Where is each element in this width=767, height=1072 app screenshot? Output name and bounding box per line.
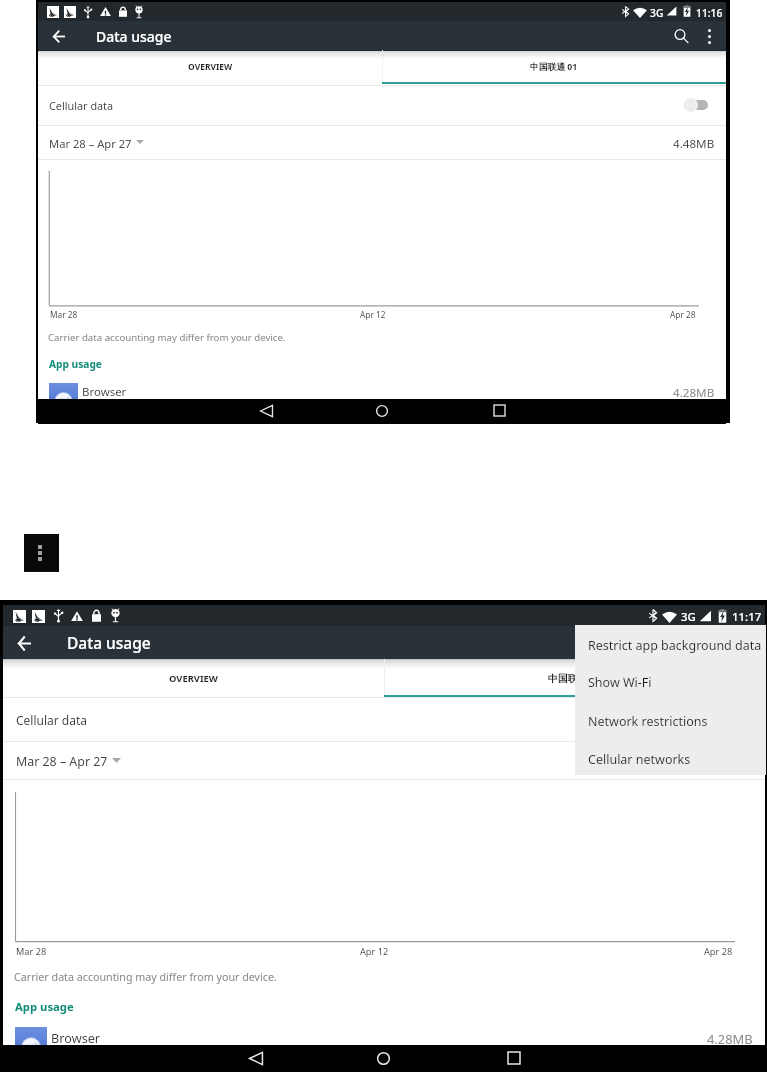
- staticText: OVERVIEW: [169, 672, 218, 685]
- staticText: Cellular data: [16, 712, 88, 728]
- button[interactable]: Browser: [3, 1021, 765, 1049]
- button[interactable]: More options: [24, 534, 59, 572]
- staticText: Apr 28: [670, 309, 696, 320]
- staticText: Mar 28 – Apr 27: [16, 753, 108, 770]
- button[interactable]: Cellular networks: [575, 740, 766, 778]
- staticText: 4.28MB: [707, 1030, 753, 1048]
- staticText: Apr 12: [360, 945, 389, 958]
- button[interactable]: More options: [730, 626, 764, 659]
- button[interactable]: More options: [694, 21, 725, 51]
- staticText: 4.48MB: [673, 136, 715, 152]
- staticText: Browser: [51, 1029, 101, 1046]
- staticText: Apr 12: [360, 309, 386, 320]
- staticText: 中国联通 01: [548, 672, 601, 685]
- button[interactable]: Navigate up: [10, 629, 39, 658]
- button[interactable]: OVERVIEW: [3, 659, 384, 697]
- button[interactable]: Back: [241, 1044, 271, 1072]
- staticText: Data usage: [67, 632, 151, 653]
- button[interactable]: 中国联通 01: [382, 50, 726, 84]
- button[interactable]: 中国联通 01: [384, 659, 765, 697]
- button[interactable]: Mar 28 – Apr 27: [3, 741, 765, 779]
- staticText: 4.28MB: [673, 385, 715, 401]
- staticText: Data usage: [96, 27, 172, 46]
- staticText: Mar 28 – Apr 27: [49, 136, 132, 151]
- button[interactable]: Browser: [38, 377, 726, 402]
- button[interactable]: Cellular data: [38, 85, 726, 125]
- staticText: Browser: [82, 384, 127, 400]
- staticText: App usage: [15, 999, 74, 1014]
- button[interactable]: Recent apps: [499, 1044, 529, 1072]
- staticText: Mar 28: [16, 945, 47, 958]
- staticText: 3G: [650, 6, 664, 20]
- button[interactable]: Home: [368, 1044, 398, 1072]
- staticText: App usage: [49, 357, 102, 371]
- staticText: Cellular data: [49, 98, 114, 113]
- staticText: Carrier data accounting may differ from …: [48, 331, 286, 344]
- staticText: OVERVIEW: [188, 61, 233, 73]
- button[interactable]: Search: [698, 626, 732, 659]
- button[interactable]: Search: [666, 21, 697, 51]
- button[interactable]: Recent apps: [486, 398, 513, 423]
- staticText: 11:17: [732, 609, 762, 625]
- staticText: 3G: [681, 609, 696, 625]
- staticText: 11:16: [696, 6, 723, 20]
- button[interactable]: Network restrictions: [575, 702, 766, 740]
- staticText: Network restrictions: [588, 713, 708, 730]
- staticText: Apr 28: [704, 945, 733, 958]
- staticText: Show Wi-Fi: [588, 674, 652, 691]
- staticText: Restrict app background data: [588, 637, 762, 654]
- button[interactable]: Back: [253, 398, 280, 423]
- button[interactable]: Mar 28 – Apr 27: [38, 125, 726, 160]
- button[interactable]: Show Wi-Fi: [575, 663, 766, 701]
- staticText: Mar 28: [50, 309, 78, 320]
- button[interactable]: OVERVIEW: [38, 50, 382, 84]
- button[interactable]: Navigate up: [45, 23, 72, 50]
- button[interactable]: Restrict app background data: [575, 626, 766, 664]
- staticText: 中国联通 01: [530, 61, 578, 73]
- button[interactable]: Home: [368, 398, 395, 423]
- staticText: Cellular networks: [588, 751, 691, 768]
- button[interactable]: Cellular data: [3, 697, 765, 741]
- staticText: Carrier data accounting may differ from …: [14, 970, 277, 985]
